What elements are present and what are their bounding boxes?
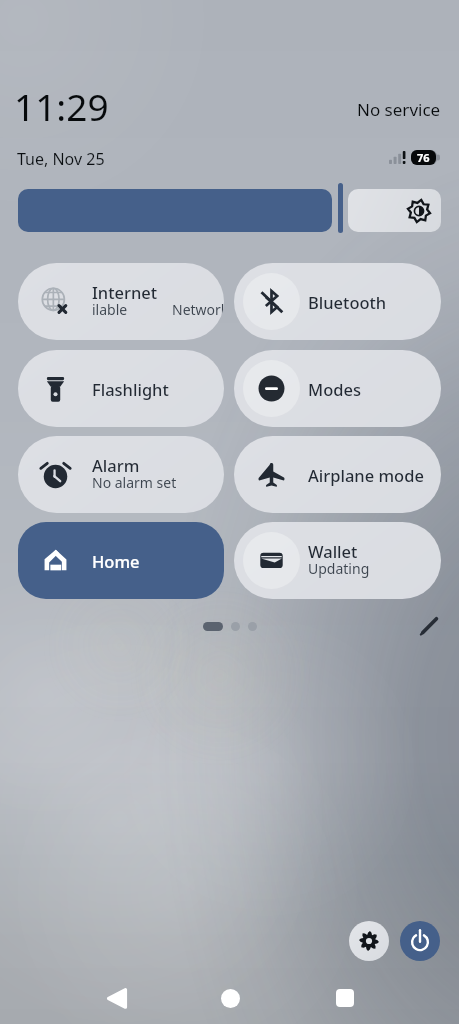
staticText: Internet [92, 281, 158, 303]
staticText: Tue, Nov 25 [17, 148, 105, 170]
button[interactable]: Airplane mode [234, 436, 441, 513]
button[interactable]: Brightness [348, 189, 441, 232]
staticText: 11:29 [14, 81, 109, 131]
staticText: Wallet [308, 540, 358, 562]
button[interactable]: Modes [234, 350, 441, 427]
staticText: Network [172, 300, 224, 319]
button[interactable]: Recent apps [317, 972, 373, 1024]
button[interactable]: Edit tiles [409, 610, 449, 642]
staticText: Flashlight [92, 378, 169, 400]
button[interactable]: Bluetooth [234, 263, 441, 340]
button[interactable]: Home [18, 522, 224, 599]
staticText: Home [92, 550, 140, 572]
staticText: Updating [308, 559, 370, 578]
staticText: 76 [417, 150, 430, 165]
button[interactable]: Alarm [18, 436, 224, 513]
staticText: No alarm set [92, 473, 177, 492]
button[interactable]: Wallet [234, 522, 441, 599]
button[interactable]: Internet [18, 263, 224, 340]
staticText: ilable [92, 300, 128, 319]
staticText: Airplane mode [308, 464, 424, 486]
button[interactable]: Power [400, 921, 440, 961]
staticText: Bluetooth [308, 291, 387, 313]
staticText: Alarm [92, 454, 140, 476]
staticText: No service [357, 98, 441, 121]
button[interactable]: Home [202, 972, 258, 1024]
button[interactable]: Flashlight [18, 350, 224, 427]
button[interactable]: Brightness level [18, 189, 332, 232]
button[interactable]: Back [89, 972, 145, 1024]
button[interactable]: Settings [349, 921, 389, 961]
staticText: Modes [308, 378, 361, 400]
